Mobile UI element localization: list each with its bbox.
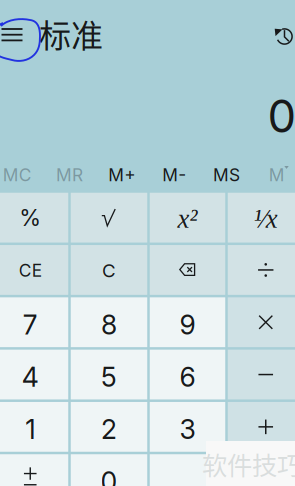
staticText: M	[269, 164, 285, 185]
staticText: 6	[179, 361, 195, 393]
staticText: 1	[25, 413, 35, 445]
staticText: %	[19, 204, 41, 231]
button[interactable]: M	[253, 159, 295, 189]
button[interactable]: M-	[148, 159, 200, 189]
staticText: x²	[177, 204, 197, 233]
staticText: 软件技巧	[202, 446, 295, 482]
button[interactable]: Nine	[150, 297, 225, 347]
staticText: MR	[56, 164, 83, 185]
staticText: 标准	[39, 10, 103, 57]
button[interactable]: M+	[96, 159, 148, 189]
button[interactable]: Zero	[71, 454, 147, 486]
button[interactable]: Clear	[71, 245, 147, 295]
button[interactable]: Divide	[228, 245, 295, 295]
staticText: 9	[179, 309, 195, 341]
button[interactable]: Eight	[71, 297, 147, 347]
button[interactable]: Three	[150, 402, 225, 452]
staticText: 8	[101, 309, 117, 341]
button[interactable]: Six	[150, 350, 225, 399]
button[interactable]: Reciprocal	[228, 193, 295, 243]
staticText: 0	[100, 465, 117, 486]
button[interactable]: Positive negative	[0, 454, 68, 486]
button[interactable]: Percent	[0, 193, 68, 243]
button[interactable]: Subtract	[228, 350, 295, 399]
button[interactable]: Multiply	[228, 297, 295, 347]
button[interactable]: Equals	[228, 454, 295, 486]
staticText: M+	[108, 164, 135, 185]
staticText: 7	[23, 309, 38, 341]
button[interactable]: Five	[71, 350, 147, 399]
button[interactable]: Square root	[71, 193, 147, 243]
button[interactable]: Decimal separator	[150, 454, 225, 486]
staticText: CE	[19, 260, 42, 281]
staticText: ¹⁄x	[254, 204, 278, 233]
button[interactable]: Seven	[0, 297, 68, 347]
staticText: 4	[22, 361, 39, 393]
button[interactable]: Square	[150, 193, 225, 243]
button[interactable]: Two	[71, 402, 147, 452]
staticText: MC	[3, 164, 32, 185]
button[interactable]: Backspace	[150, 245, 225, 295]
button[interactable]: Clear entry	[0, 245, 68, 295]
button[interactable]: MR	[43, 159, 96, 189]
staticText: 5	[101, 361, 117, 393]
button[interactable]: MC	[0, 159, 43, 189]
staticText: C	[102, 259, 116, 282]
staticText: 3	[179, 413, 195, 445]
button[interactable]: History	[272, 24, 295, 48]
button[interactable]: One	[0, 402, 68, 452]
button[interactable]: Four	[0, 350, 68, 399]
button[interactable]: MS	[200, 159, 253, 189]
button[interactable]: Menu	[1, 24, 35, 58]
button[interactable]: Add	[228, 402, 295, 452]
staticText: MS	[213, 164, 240, 185]
staticText: 0	[267, 89, 295, 143]
staticText: M-	[162, 164, 186, 185]
staticText: 2	[101, 413, 117, 445]
